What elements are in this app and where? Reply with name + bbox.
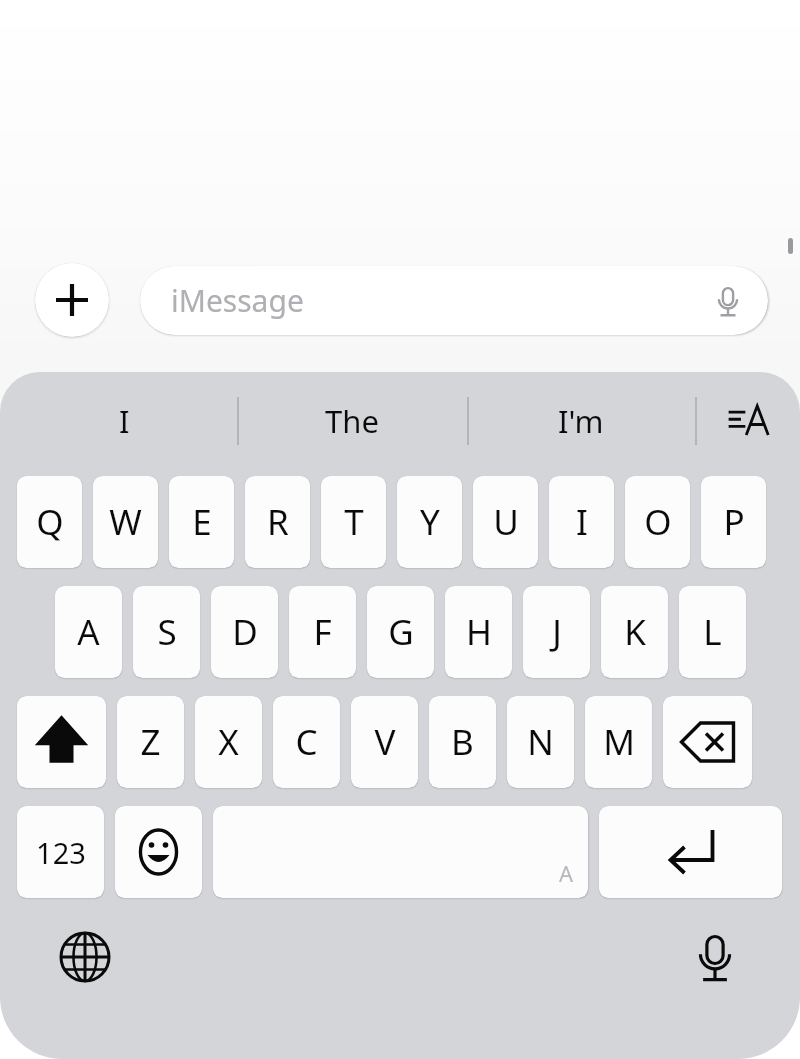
button[interactable]: D — [211, 586, 278, 678]
staticText: C — [295, 718, 318, 766]
staticText: X — [218, 718, 239, 766]
button[interactable]: I — [29, 378, 219, 464]
button[interactable]: T — [321, 476, 386, 568]
staticText: A — [77, 608, 100, 656]
button[interactable]: Backspace — [663, 696, 752, 788]
button[interactable]: V — [351, 696, 418, 788]
button[interactable]: Q — [17, 476, 82, 568]
staticText: 123 — [36, 833, 86, 872]
staticText: S — [157, 608, 177, 656]
button[interactable]: Dictate — [706, 279, 750, 323]
staticText: F — [313, 608, 332, 656]
button[interactable]: C — [273, 696, 340, 788]
staticText: P — [723, 498, 745, 546]
button[interactable]: G — [367, 586, 434, 678]
button[interactable]: Y — [397, 476, 462, 568]
button[interactable]: U — [473, 476, 538, 568]
button[interactable]: 123 — [17, 806, 104, 898]
staticText: iMessage — [171, 280, 304, 321]
button[interactable]: I — [549, 476, 614, 568]
staticText: R — [267, 498, 289, 546]
button[interactable]: A — [55, 586, 122, 678]
button[interactable]: Space — [213, 806, 588, 898]
staticText: O — [644, 498, 672, 546]
button[interactable]: W — [93, 476, 158, 568]
button[interactable]: F — [289, 586, 356, 678]
staticText: I'm — [558, 400, 604, 442]
staticText: T — [344, 498, 364, 546]
button[interactable]: Add attachment — [35, 263, 109, 337]
staticText: U — [493, 498, 519, 546]
staticText: H — [466, 608, 492, 656]
staticText: A — [559, 858, 574, 888]
staticText: M — [603, 718, 635, 766]
button[interactable]: Dictation — [676, 918, 754, 996]
staticText: I — [576, 498, 588, 546]
button[interactable]: N — [507, 696, 574, 788]
button[interactable]: P — [701, 476, 766, 568]
button[interactable]: Emoji — [115, 806, 202, 898]
button[interactable]: B — [429, 696, 496, 788]
button[interactable]: I'm — [486, 378, 676, 464]
button[interactable]: The — [257, 378, 447, 464]
staticText: Y — [420, 498, 440, 546]
button[interactable]: S — [133, 586, 200, 678]
button[interactable]: Z — [117, 696, 184, 788]
staticText: K — [624, 608, 646, 656]
button[interactable]: L — [679, 586, 746, 678]
staticText: N — [527, 718, 554, 766]
staticText: Q — [36, 498, 64, 546]
button[interactable]: H — [445, 586, 512, 678]
staticText: V — [374, 718, 396, 766]
button[interactable]: K — [601, 586, 668, 678]
button[interactable]: E — [169, 476, 234, 568]
button[interactable]: M — [585, 696, 652, 788]
button[interactable]: O — [625, 476, 690, 568]
staticText: B — [451, 718, 474, 766]
staticText: W — [109, 498, 142, 546]
button[interactable]: Return — [599, 806, 782, 898]
staticText: Z — [140, 718, 161, 766]
button[interactable]: R — [245, 476, 310, 568]
staticText: E — [192, 498, 212, 546]
button[interactable]: Shift — [17, 696, 106, 788]
button[interactable]: J — [523, 586, 590, 678]
staticText: D — [232, 608, 258, 656]
button[interactable]: X — [195, 696, 262, 788]
staticText: G — [388, 608, 414, 656]
button[interactable]: iMessage — [140, 266, 768, 335]
staticText: I — [119, 400, 130, 442]
button[interactable]: Formatting — [705, 378, 791, 464]
staticText: J — [552, 608, 562, 656]
staticText: The — [325, 400, 379, 442]
button[interactable]: Change keyboard — [46, 918, 124, 996]
staticText: L — [703, 608, 722, 656]
